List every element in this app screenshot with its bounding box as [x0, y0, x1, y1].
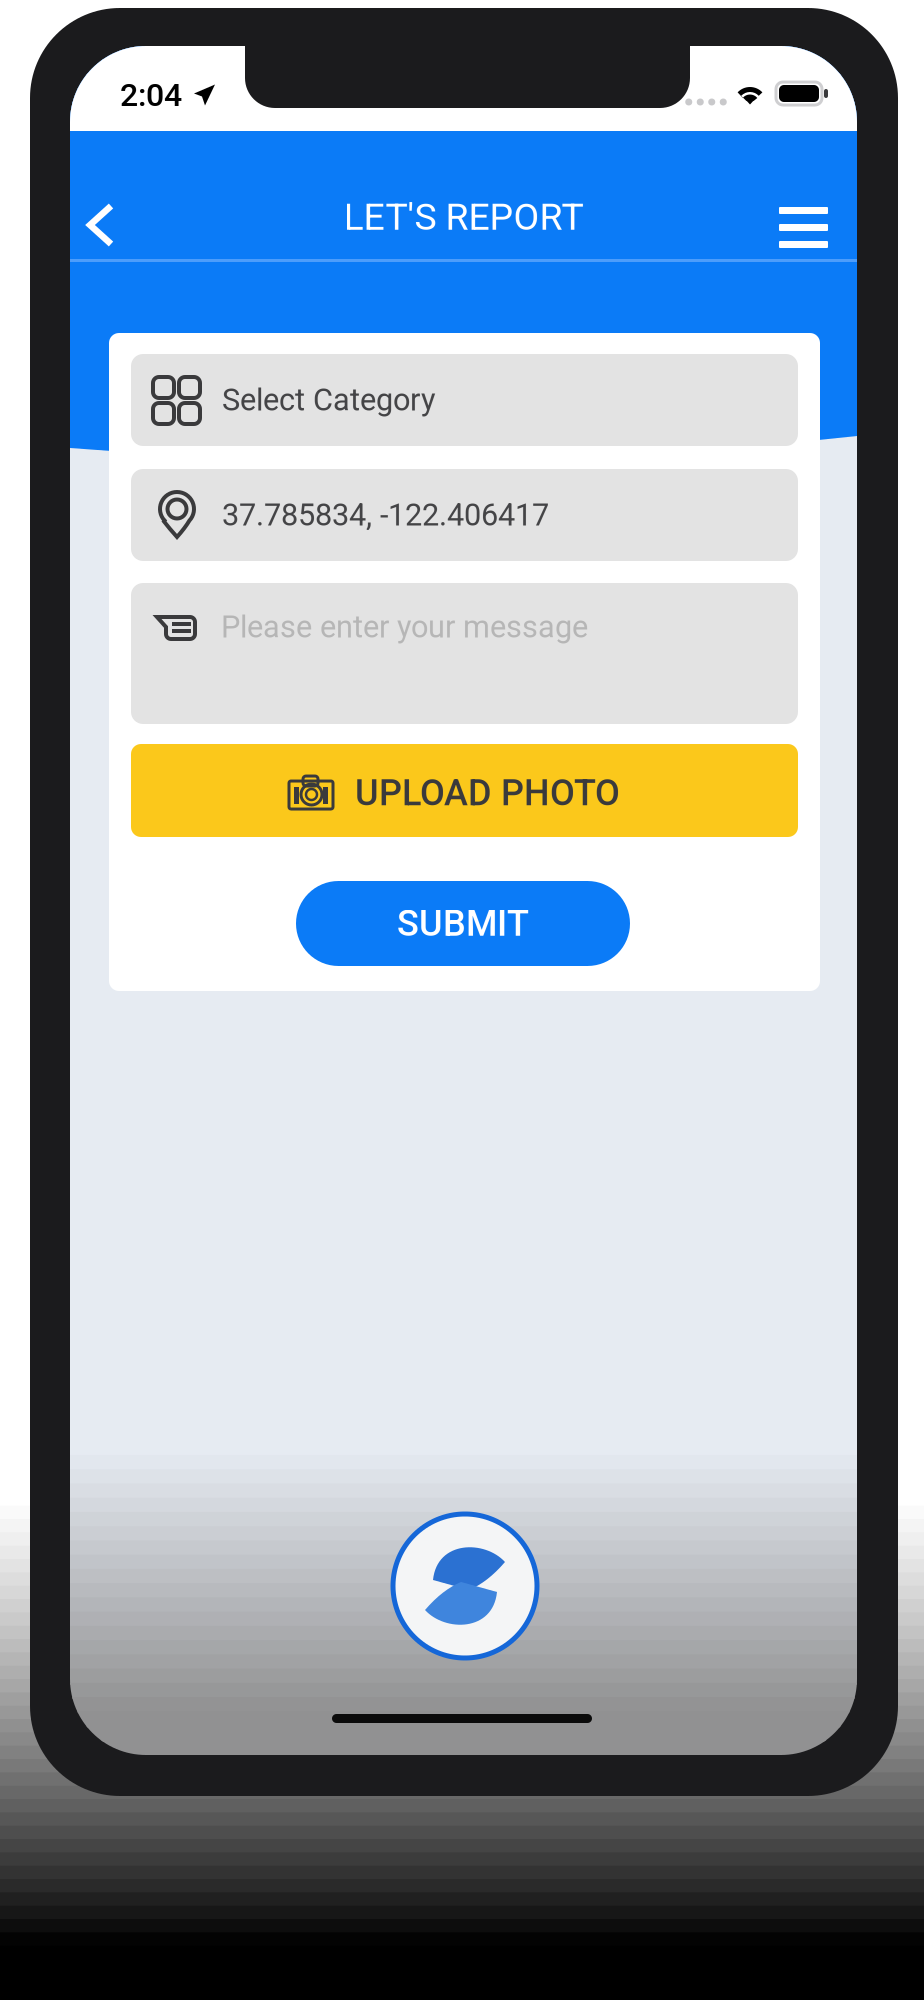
staticText: Please enter your message [221, 609, 588, 645]
staticText: SUBMIT [397, 902, 529, 945]
staticText: LET'S REPORT [343, 195, 583, 239]
button[interactable]: Back [73, 183, 149, 279]
staticText: Select Category [222, 382, 436, 418]
staticText: 37.785834, -122.406417 [222, 497, 549, 533]
staticText: 2:04 [120, 76, 182, 114]
button[interactable]: Menu [767, 191, 839, 259]
button[interactable]: 37.785834, -122.406417 [131, 469, 798, 561]
button[interactable]: Select Category [131, 354, 798, 446]
button[interactable]: Please enter your message [131, 583, 798, 724]
staticText: UPLOAD PHOTO [355, 772, 620, 814]
button[interactable]: UPLOAD PHOTO [131, 744, 798, 837]
button[interactable]: SUBMIT [296, 881, 630, 966]
